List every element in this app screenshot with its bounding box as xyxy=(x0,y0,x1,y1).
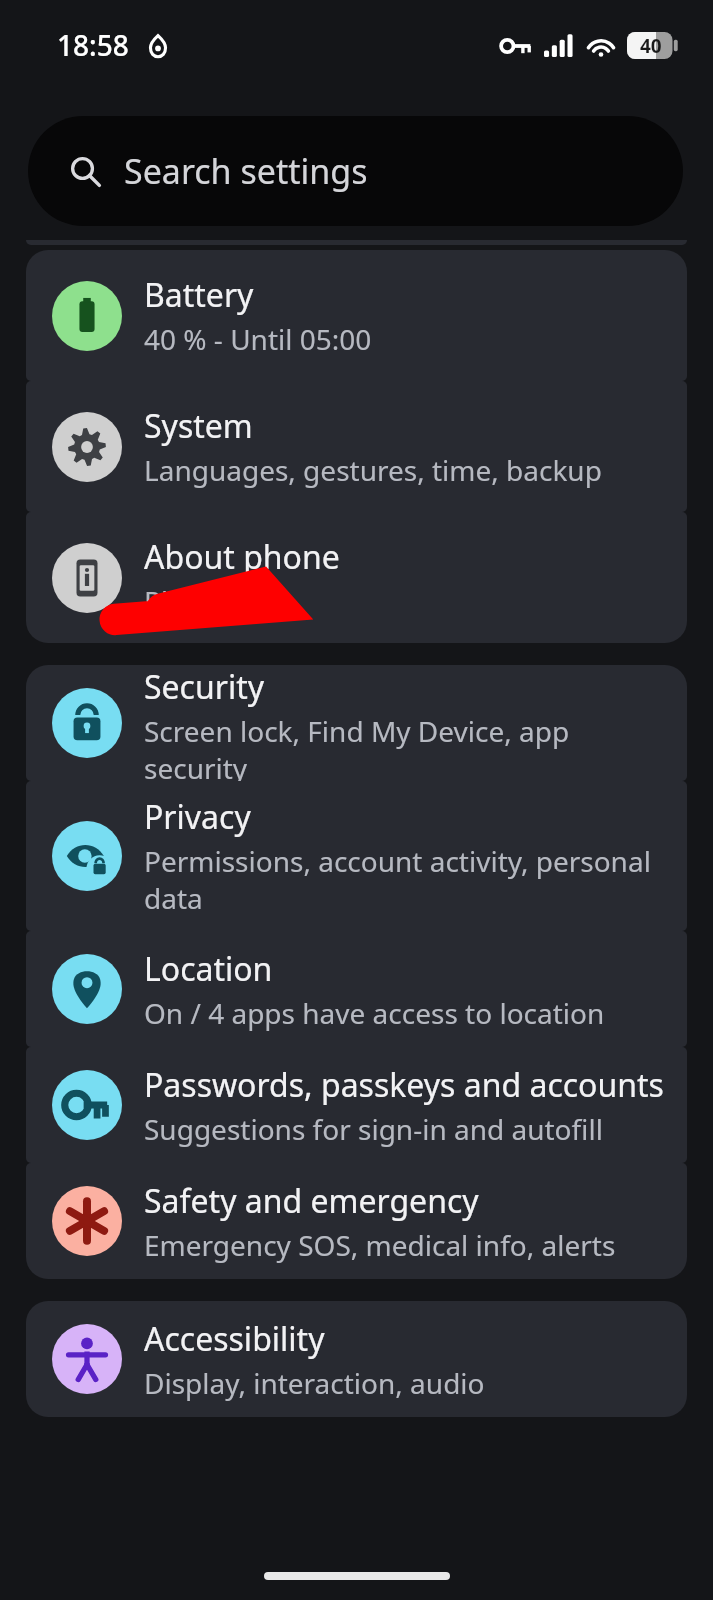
staticText: Search settings xyxy=(124,148,368,194)
other: Privacy xyxy=(52,821,122,891)
other: Safety and emergency xyxy=(52,1186,122,1256)
staticText: Emergency SOS, medical info, alerts xyxy=(144,1226,616,1264)
staticText: 40 xyxy=(640,33,662,59)
button[interactable]: Passwords, passkeys and accounts xyxy=(26,1047,687,1163)
staticText: About phone xyxy=(144,535,340,579)
button[interactable]: Battery xyxy=(26,250,687,381)
button[interactable]: About phone xyxy=(26,512,687,643)
staticText: Location xyxy=(144,947,273,991)
staticText: Phone xyxy=(144,582,229,620)
staticText: On / 4 apps have access to location xyxy=(144,994,605,1032)
button[interactable]: Search settings xyxy=(28,116,683,226)
staticText: Passwords, passkeys and accounts xyxy=(144,1063,664,1107)
staticText: Languages, gestures, time, backup xyxy=(144,451,602,489)
button[interactable]: System xyxy=(26,381,687,512)
other: Battery xyxy=(52,281,122,351)
staticText: Accessibility xyxy=(144,1317,325,1361)
other: Security xyxy=(52,688,122,758)
button[interactable]: Accessibility xyxy=(26,1301,687,1417)
staticText: Security xyxy=(144,665,265,709)
staticText: Screen lock, Find My Device, app securit… xyxy=(144,712,671,781)
other: Location xyxy=(52,954,122,1024)
staticText: Display, interaction, audio xyxy=(144,1364,485,1402)
staticText: 18:58 xyxy=(57,26,129,64)
other: Accessibility xyxy=(52,1324,122,1394)
button[interactable]: Security xyxy=(26,665,687,781)
staticText: Privacy xyxy=(144,795,251,839)
staticText: Battery xyxy=(144,273,254,317)
button[interactable]: Location xyxy=(26,931,687,1047)
staticText: Safety and emergency xyxy=(144,1179,479,1223)
staticText: System xyxy=(144,404,253,448)
button[interactable]: Safety and emergency xyxy=(26,1163,687,1279)
staticText: 40 % - Until 05:00 xyxy=(144,320,372,358)
other: About phone xyxy=(52,543,122,613)
button[interactable]: Privacy xyxy=(26,781,687,931)
staticText: Suggestions for sign-in and autofill xyxy=(144,1110,603,1148)
other: Passwords, passkeys and accounts xyxy=(52,1070,122,1140)
other: System xyxy=(52,412,122,482)
staticText: Permissions, account activity, personal … xyxy=(144,842,651,917)
